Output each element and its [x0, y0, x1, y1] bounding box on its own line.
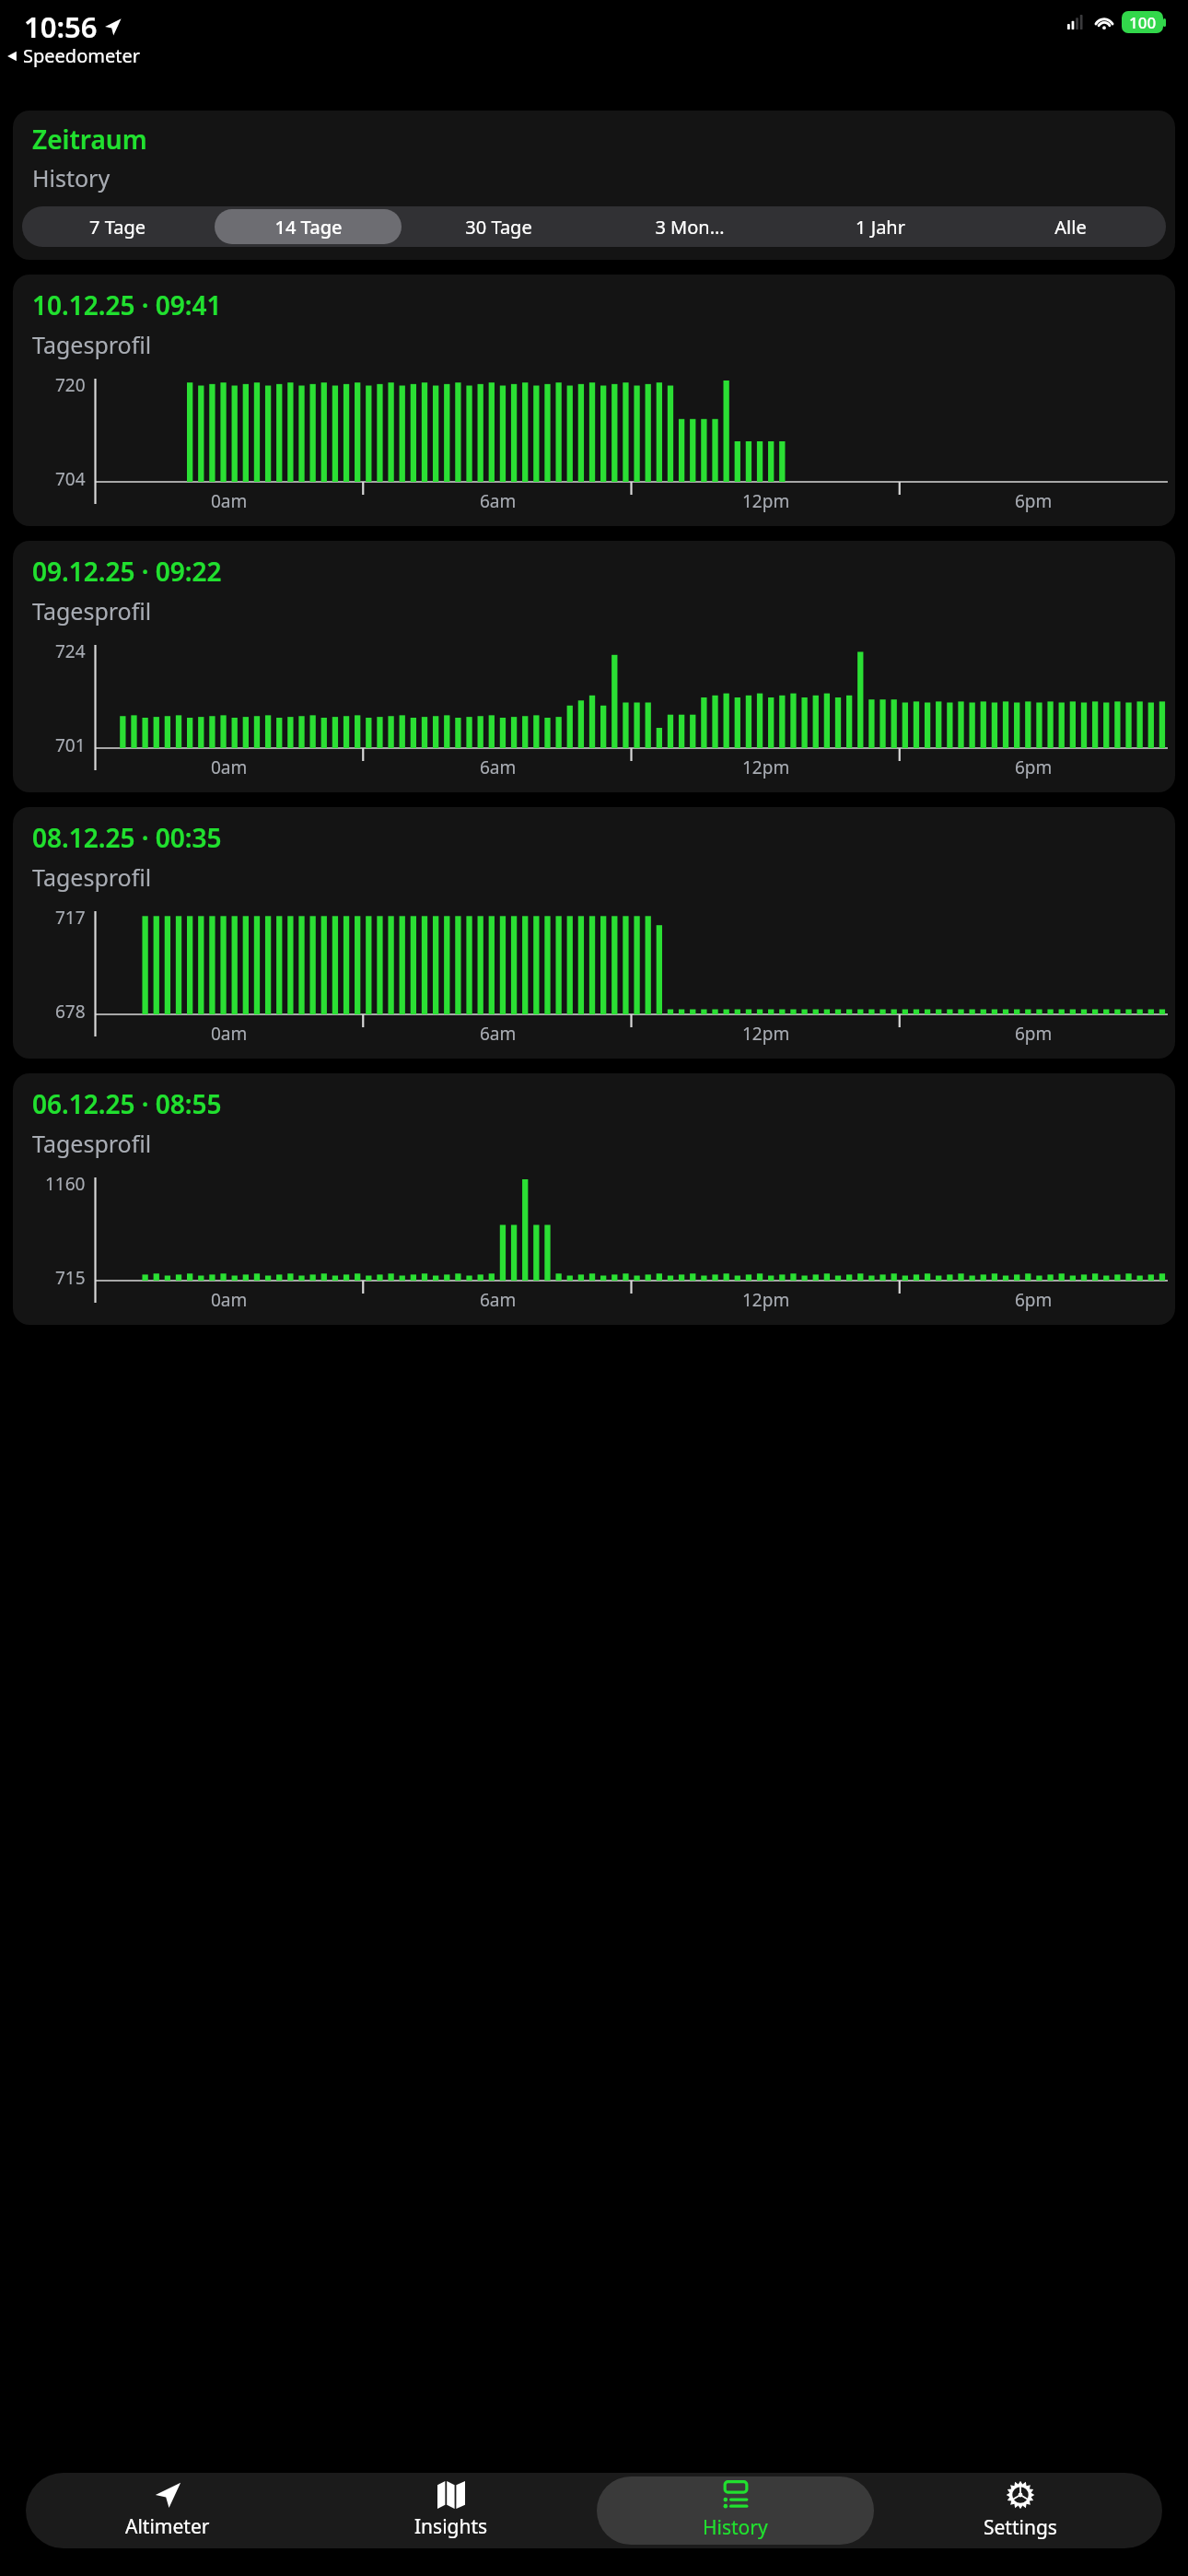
staticText: Speedometer — [23, 43, 140, 68]
button[interactable]: 10.12.25 · 09:41 — [13, 275, 1175, 526]
staticText: History — [32, 162, 111, 193]
staticText: 09.12.25 · 09:22 — [32, 554, 222, 589]
staticText: 720 — [55, 373, 86, 397]
staticText: Tagesprofil — [32, 1128, 152, 1159]
staticText: 0am — [211, 755, 248, 779]
button[interactable]: History — [597, 2476, 874, 2545]
staticText: Alle — [1054, 215, 1087, 240]
staticText: 6pm — [1015, 1288, 1053, 1312]
staticText: History — [703, 2514, 768, 2541]
button[interactable]: 30 Tage — [405, 209, 592, 244]
staticText: 0am — [211, 489, 248, 513]
staticText: 14 Tage — [274, 215, 343, 240]
button[interactable]: Alle — [977, 209, 1164, 244]
staticText: 06.12.25 · 08:55 — [32, 1086, 222, 1121]
staticText: 6am — [480, 1288, 517, 1312]
staticText: Altimeter — [125, 2513, 210, 2540]
staticText: 3 Mon… — [655, 215, 725, 240]
button[interactable]: Settings — [881, 2476, 1159, 2545]
staticText: 6am — [480, 489, 517, 513]
staticText: 0am — [211, 1288, 248, 1312]
staticText: 12pm — [742, 1288, 790, 1312]
staticText: 08.12.25 · 00:35 — [32, 820, 222, 855]
staticText: 10.12.25 · 09:41 — [32, 287, 222, 322]
button[interactable]: 06.12.25 · 08:55 — [13, 1073, 1175, 1325]
staticText: Settings — [984, 2514, 1057, 2541]
staticText: 6am — [480, 1022, 517, 1046]
staticText: 717 — [55, 906, 86, 930]
staticText: 0am — [211, 1022, 248, 1046]
button[interactable]: 14 Tage — [215, 209, 402, 244]
button[interactable]: 3 Mon… — [596, 209, 783, 244]
staticText: 1 Jahr — [856, 215, 905, 240]
staticText: 10:56 — [24, 7, 98, 46]
staticText: 100 — [1129, 12, 1157, 33]
staticText: 6am — [480, 755, 517, 779]
staticText: Tagesprofil — [32, 861, 152, 893]
staticText: 30 Tage — [465, 215, 532, 240]
button[interactable]: 08.12.25 · 00:35 — [13, 807, 1175, 1059]
staticText: 704 — [55, 467, 86, 491]
staticText: 724 — [55, 639, 86, 663]
staticText: 6pm — [1015, 489, 1053, 513]
staticText: 12pm — [742, 755, 790, 779]
staticText: 1160 — [45, 1172, 86, 1196]
staticText: 6pm — [1015, 1022, 1053, 1046]
staticText: 6pm — [1015, 755, 1053, 779]
staticText: 7 Tage — [89, 215, 146, 240]
staticText: 12pm — [742, 489, 790, 513]
staticText: 678 — [55, 1000, 86, 1024]
staticText: Insights — [414, 2513, 488, 2540]
button[interactable]: 1 Jahr — [786, 209, 973, 244]
button[interactable]: 09.12.25 · 09:22 — [13, 541, 1175, 792]
staticText: Tagesprofil — [32, 595, 152, 626]
staticText: 12pm — [742, 1022, 790, 1046]
staticText: 715 — [55, 1266, 86, 1290]
staticText: Tagesprofil — [32, 329, 152, 360]
button[interactable]: Insights — [313, 2476, 589, 2545]
staticText: 701 — [55, 733, 86, 757]
button[interactable]: 7 Tage — [24, 209, 211, 244]
staticText: Zeitraum — [32, 122, 147, 157]
button[interactable]: Altimeter — [29, 2476, 306, 2545]
